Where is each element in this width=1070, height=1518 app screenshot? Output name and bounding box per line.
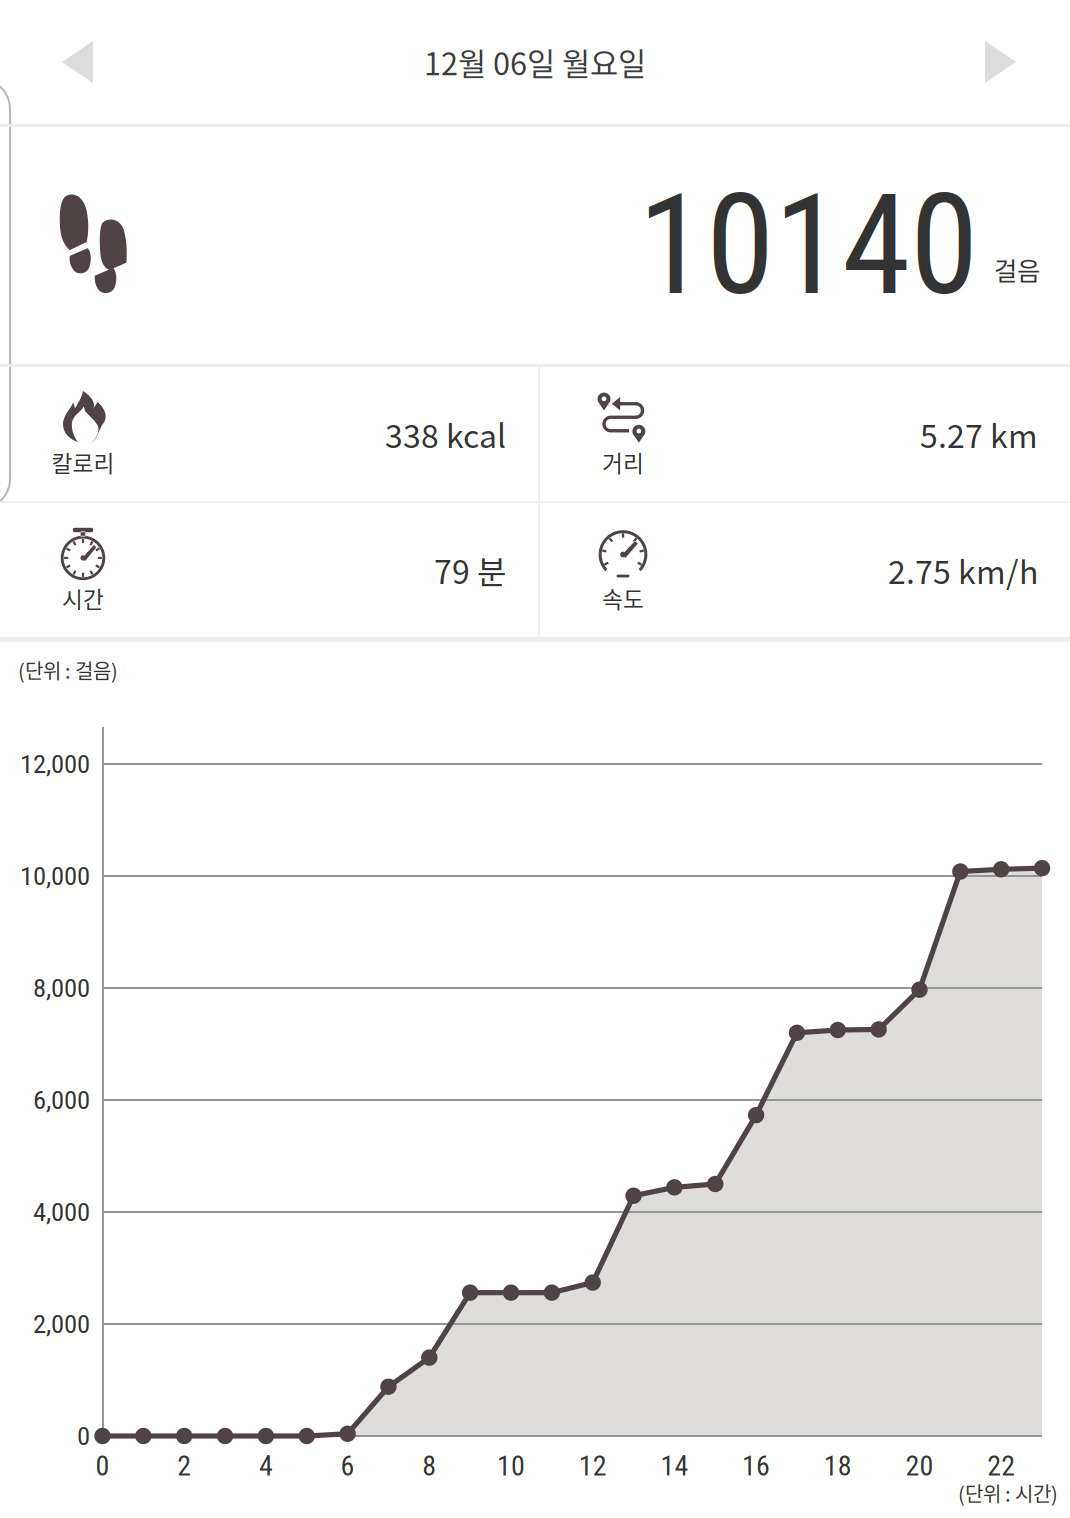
staticText: 14 <box>660 1450 688 1482</box>
button[interactable]: 10140 <box>0 127 1070 364</box>
button[interactable]: 칼로리 <box>0 367 538 501</box>
staticText: (단위 : 걸음) <box>18 655 118 684</box>
staticText: 시간 <box>62 582 104 614</box>
staticText: 12월 06일 월요일 <box>424 40 646 84</box>
staticText: 5.27 km <box>920 411 1038 457</box>
staticText: 4,000 <box>33 1196 90 1228</box>
staticText: 2 <box>177 1450 191 1482</box>
staticText: 0 <box>77 1420 90 1452</box>
staticText: 10140 <box>638 164 978 327</box>
button[interactable]: Previous day <box>0 11 133 113</box>
staticText: 칼로리 <box>51 446 114 478</box>
staticText: 10 <box>497 1450 525 1482</box>
staticText: 8,000 <box>33 972 90 1004</box>
staticText: 2,000 <box>33 1308 90 1340</box>
button[interactable]: 거리 <box>540 367 1070 501</box>
button[interactable]: 시간 <box>0 503 538 637</box>
button[interactable]: Next day <box>945 11 1070 113</box>
staticText: 거리 <box>602 446 644 478</box>
staticText: 12,000 <box>20 748 90 780</box>
staticText: 6,000 <box>33 1084 90 1116</box>
button[interactable]: 속도 <box>540 503 1070 637</box>
staticText: 338 kcal <box>385 411 506 457</box>
staticText: 18 <box>824 1450 852 1482</box>
staticText: 속도 <box>602 582 644 614</box>
staticText: 0 <box>95 1450 109 1482</box>
staticText: 16 <box>742 1450 770 1482</box>
staticText: (단위 : 시간) <box>958 1478 1058 1507</box>
staticText: 22 <box>987 1450 1015 1482</box>
staticText: 20 <box>905 1450 933 1482</box>
staticText: 79 분 <box>434 547 506 593</box>
staticText: 12 <box>579 1450 607 1482</box>
staticText: 10,000 <box>20 860 90 892</box>
staticText: 8 <box>422 1450 436 1482</box>
staticText: 4 <box>259 1450 273 1482</box>
staticText: 걸음 <box>994 251 1040 288</box>
staticText: 6 <box>341 1450 355 1482</box>
staticText: 2.75 km/h <box>888 547 1038 593</box>
